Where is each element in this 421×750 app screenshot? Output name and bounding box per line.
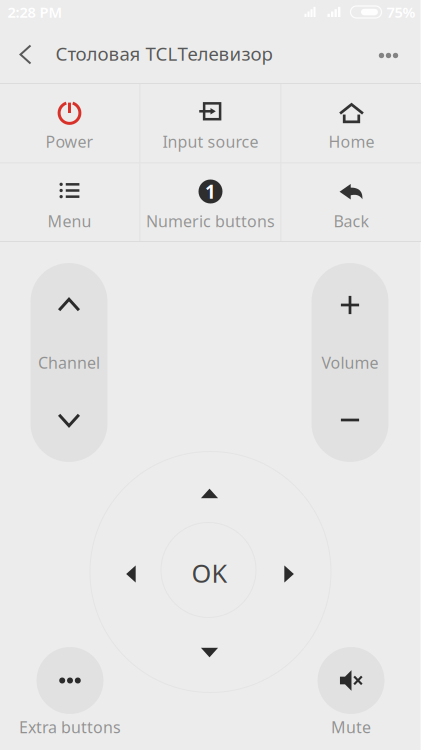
- staticText: Extra buttons: [19, 716, 121, 738]
- staticText: Mute: [331, 716, 371, 738]
- staticText: 75%: [386, 2, 415, 22]
- button[interactable]: Back: [281, 163, 421, 241]
- staticText: Back: [333, 210, 369, 232]
- button[interactable]: Channel down: [30, 380, 107, 460]
- button[interactable]: Home: [281, 84, 421, 162]
- button[interactable]: Menu: [0, 163, 139, 241]
- button[interactable]: Right: [266, 552, 310, 596]
- button[interactable]: Mute: [280, 647, 421, 714]
- button[interactable]: Channel up: [30, 265, 107, 345]
- button[interactable]: Down: [187, 630, 231, 674]
- staticText: Input source: [162, 131, 258, 152]
- staticText: Power: [45, 131, 93, 152]
- button[interactable]: Input source: [140, 84, 280, 162]
- staticText: 2:28 PM: [7, 2, 62, 22]
- staticText: Menu: [47, 210, 91, 232]
- button[interactable]: More options: [371, 24, 421, 83]
- button[interactable]: Power: [0, 84, 139, 162]
- button[interactable]: Volume down: [311, 380, 388, 460]
- button[interactable]: Extra buttons: [0, 647, 140, 714]
- button[interactable]: Back: [0, 24, 55, 83]
- staticText: Столовая TCLТелевизор: [55, 41, 272, 66]
- button[interactable]: 1: [140, 163, 280, 241]
- staticText: OK: [191, 556, 227, 590]
- staticText: Numeric buttons: [146, 210, 275, 232]
- staticText: Volume: [321, 352, 378, 373]
- button[interactable]: Volume up: [311, 265, 388, 345]
- staticText: Channel: [38, 352, 100, 373]
- staticText: Home: [328, 131, 374, 152]
- button[interactable]: OK: [162, 526, 256, 620]
- button[interactable]: Left: [109, 552, 153, 596]
- staticText: 1: [205, 179, 216, 204]
- button[interactable]: Up: [187, 472, 231, 516]
